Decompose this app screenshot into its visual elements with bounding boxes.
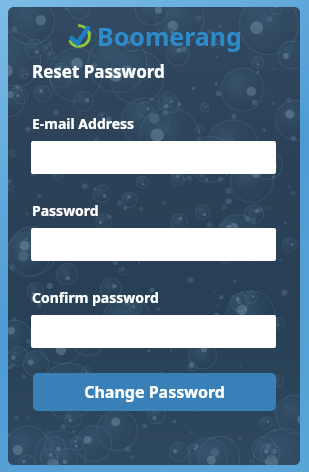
other: Boomerang logo	[66, 23, 92, 49]
staticText: Boomerang	[97, 19, 242, 53]
staticText: Change Password	[84, 381, 225, 403]
button[interactable]: Password	[31, 228, 276, 261]
button[interactable]: Change Password	[33, 373, 276, 411]
staticText: Reset Password	[32, 60, 165, 83]
button[interactable]: E-mail Address	[31, 141, 276, 174]
button[interactable]: Confirm password	[31, 315, 276, 348]
staticText: Password	[32, 201, 99, 220]
staticText: E-mail Address	[32, 114, 135, 133]
staticText: Confirm password	[32, 288, 159, 307]
